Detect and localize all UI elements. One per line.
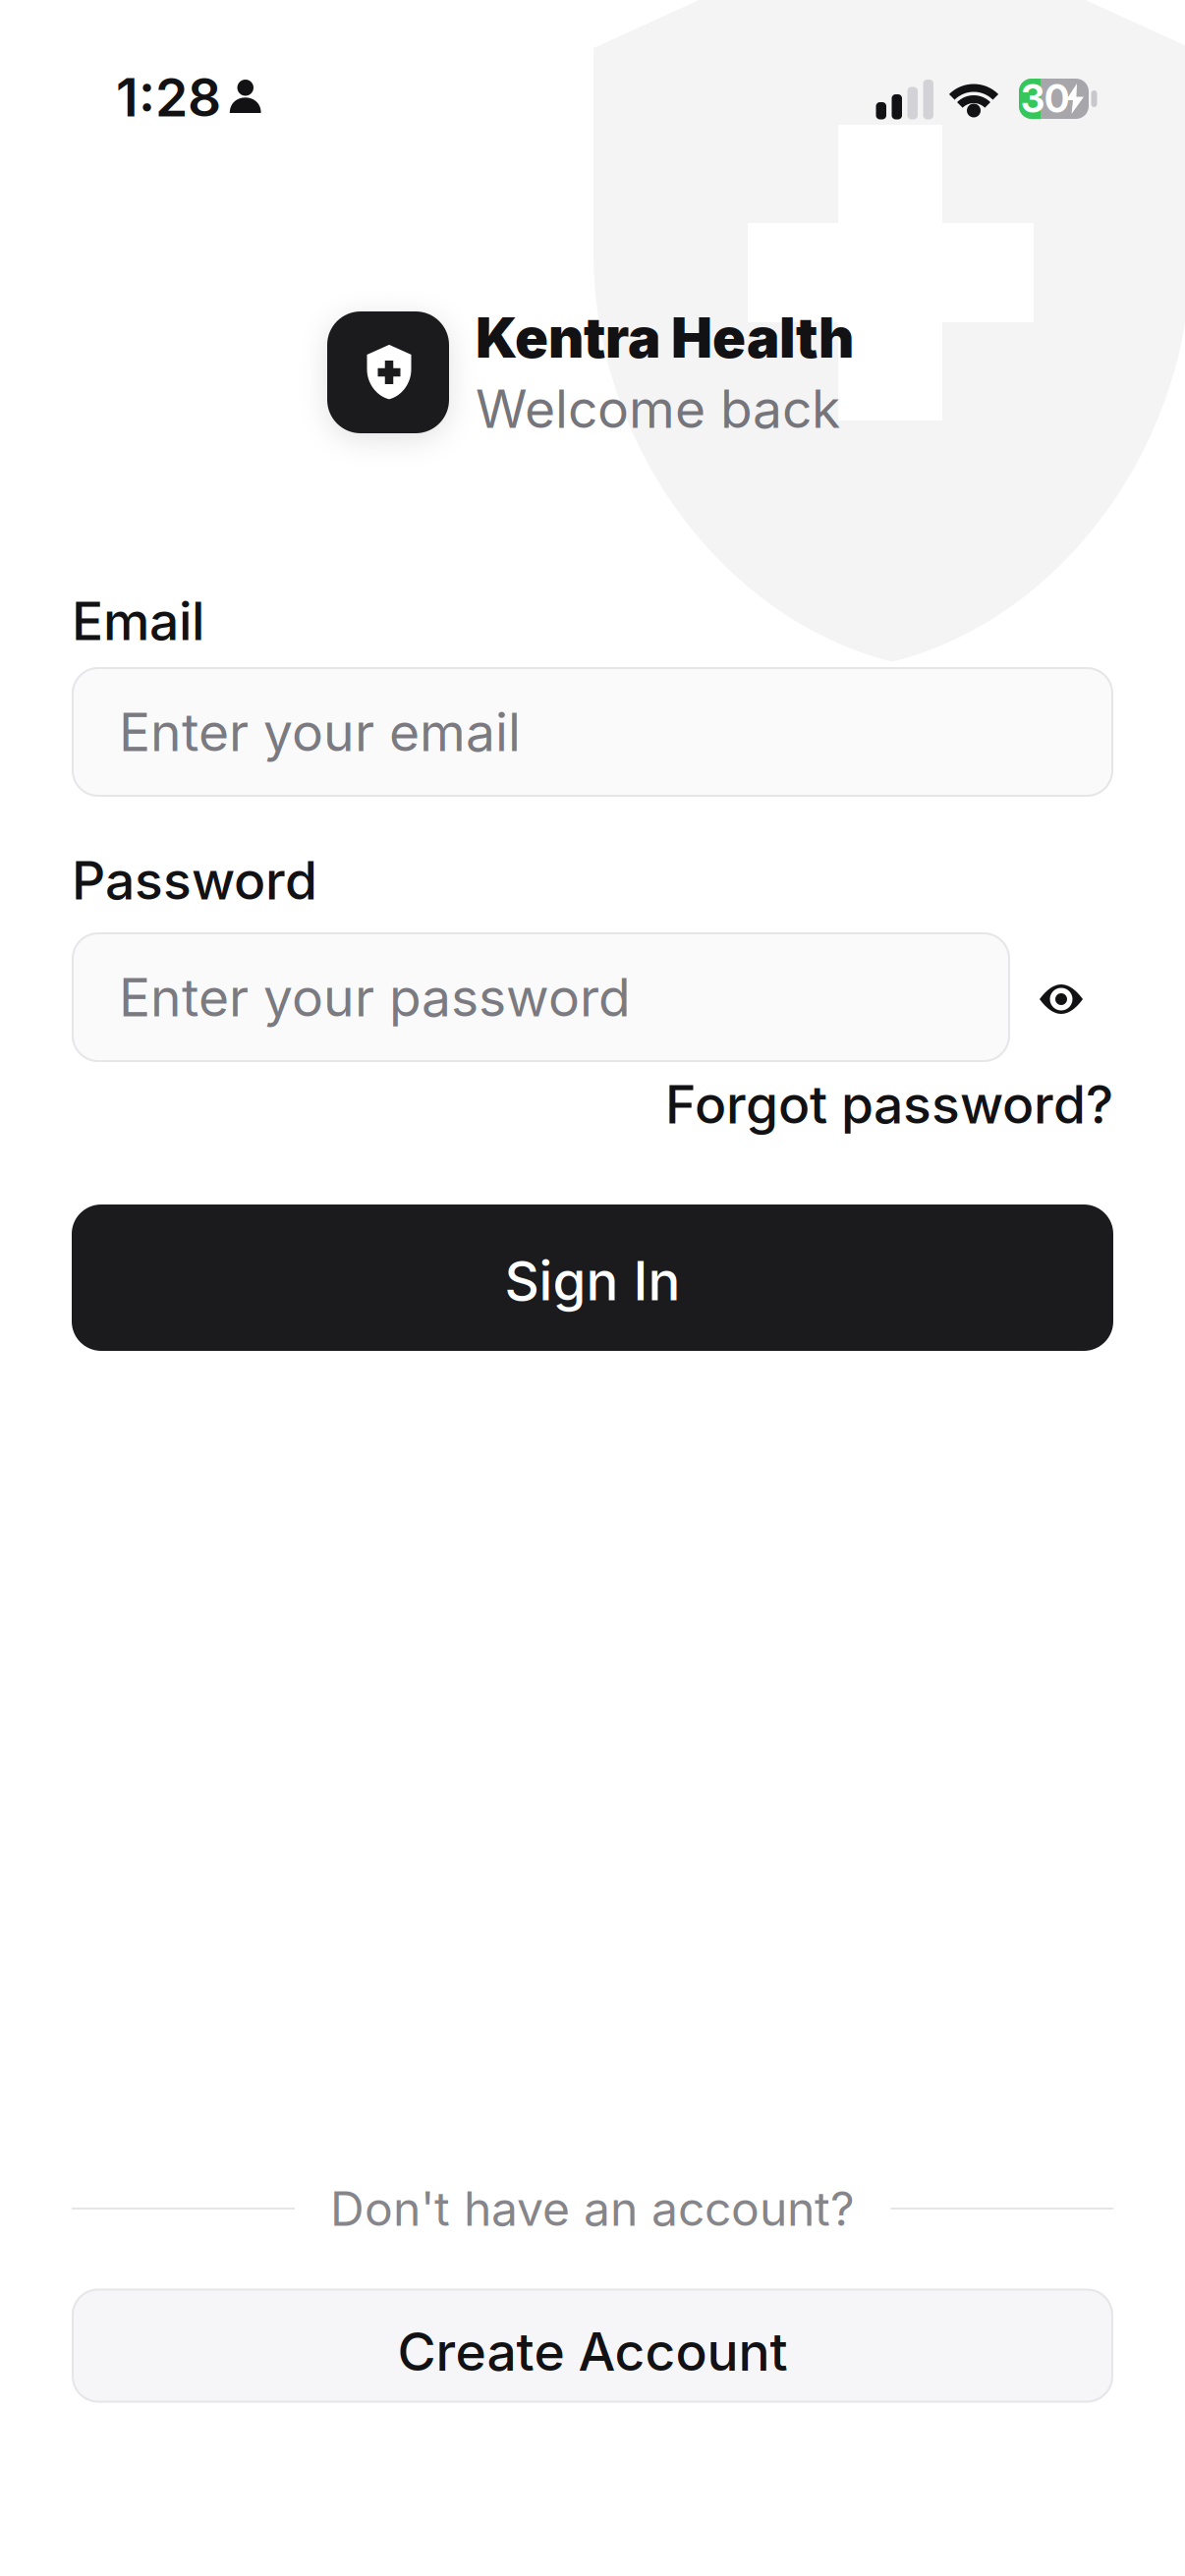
staticText: Kentra Health: [476, 305, 854, 370]
staticText: Create Account: [397, 2321, 788, 2382]
staticText: Password: [72, 849, 317, 911]
staticText: Forgot password?: [665, 1073, 1113, 1135]
button[interactable]: Enter your email: [72, 667, 1113, 797]
staticText: Enter your email: [119, 701, 521, 763]
staticText: 1:28: [116, 66, 221, 128]
button[interactable]: Sign In: [72, 1204, 1113, 1351]
staticText: 30: [1021, 76, 1069, 121]
button[interactable]: Show password: [1040, 984, 1083, 1014]
staticText: Don't have an account?: [330, 2181, 855, 2236]
staticText: Sign In: [505, 1249, 680, 1312]
staticText: Enter your password: [119, 966, 631, 1028]
button[interactable]: Enter your password: [72, 932, 1010, 1062]
button[interactable]: Forgot password?: [665, 1073, 1113, 1135]
staticText: Email: [72, 590, 204, 652]
staticText: Welcome back: [476, 378, 840, 440]
button[interactable]: Create Account: [72, 2289, 1113, 2403]
